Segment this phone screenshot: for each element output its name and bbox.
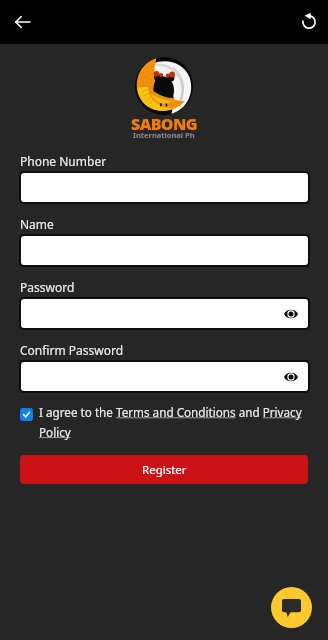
button[interactable]: Show password: [282, 368, 300, 386]
button[interactable]: [21, 173, 308, 202]
staticText: Register: [142, 462, 187, 478]
button[interactable]: Register: [20, 455, 308, 484]
button[interactable]: Refresh: [295, 8, 323, 36]
staticText: Name: [20, 216, 54, 232]
button[interactable]: I agree checkbox: [20, 408, 33, 421]
button[interactable]: [21, 236, 308, 265]
staticText: I agree to the Terms and Conditions and …: [39, 404, 308, 440]
staticText: SABONG: [131, 113, 197, 135]
staticText: Password: [20, 279, 75, 295]
button[interactable]: I agree checkbox: [20, 404, 308, 440]
staticText: Confirm Password: [20, 342, 124, 358]
button[interactable]: Show password: [21, 362, 308, 391]
button[interactable]: Chat: [271, 587, 312, 628]
button[interactable]: Back: [8, 8, 36, 36]
button[interactable]: Show password: [282, 305, 300, 323]
staticText: International Ph: [133, 130, 195, 140]
button[interactable]: Show password: [21, 299, 308, 328]
staticText: Phone Number: [20, 153, 107, 169]
